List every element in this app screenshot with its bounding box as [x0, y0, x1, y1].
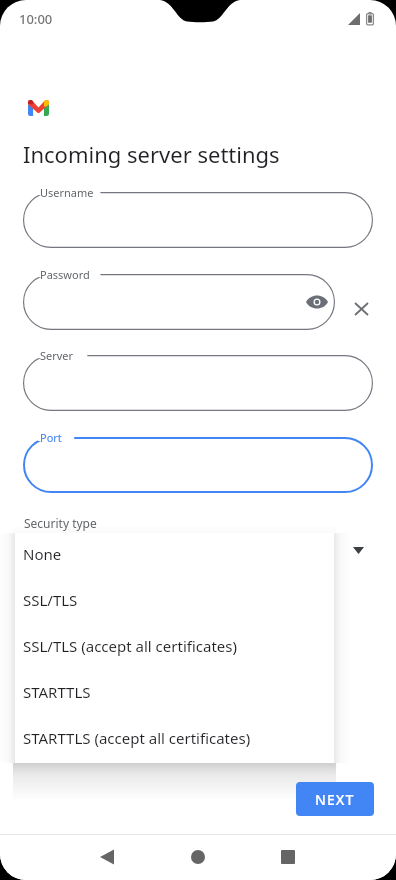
- staticText: Port: [40, 430, 62, 445]
- button[interactable]: None: [15, 531, 334, 577]
- staticText: None: [23, 544, 62, 564]
- staticText: SSL/TLS (accept all certificates): [23, 636, 237, 656]
- staticText: SSL/TLS: [23, 590, 78, 610]
- button[interactable]: SSL/TLS (accept all certificates): [15, 623, 334, 669]
- button[interactable]: NEXT: [296, 782, 374, 816]
- staticText: Server: [40, 348, 74, 363]
- staticText: STARTTLS (accept all certificates): [23, 728, 251, 748]
- button[interactable]: STARTTLS: [15, 669, 334, 715]
- staticText: Username: [40, 185, 94, 200]
- button[interactable]: Username: [23, 192, 373, 248]
- button[interactable]: SSL/TLS: [15, 577, 334, 623]
- staticText: NEXT: [315, 790, 355, 809]
- button[interactable]: STARTTLS (accept all certificates): [15, 715, 334, 761]
- staticText: 10:00: [19, 10, 53, 28]
- staticText: Password: [40, 267, 90, 282]
- button[interactable]: Clear: [345, 292, 378, 325]
- button[interactable]: Show security type options: [346, 538, 370, 562]
- staticText: STARTTLS: [23, 682, 91, 702]
- button[interactable]: Back: [95, 845, 119, 869]
- button[interactable]: Show password: [303, 288, 331, 316]
- button[interactable]: Password: [23, 274, 335, 330]
- button[interactable]: Port: [23, 437, 373, 493]
- button[interactable]: Recent apps: [276, 845, 300, 869]
- button[interactable]: Server: [23, 355, 373, 411]
- staticText: Security type: [24, 515, 97, 531]
- staticText: Incoming server settings: [23, 139, 280, 169]
- button[interactable]: Home: [186, 845, 210, 869]
